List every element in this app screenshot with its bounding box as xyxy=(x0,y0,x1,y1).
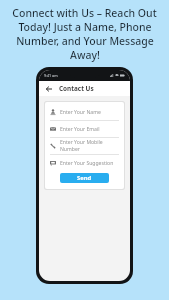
button[interactable]: Enter Your Mobile Number xyxy=(45,138,124,154)
button[interactable]: Enter Your Suggestion xyxy=(45,155,124,171)
staticText: Enter Your Suggestion xyxy=(60,160,114,167)
button[interactable]: Enter Your Email xyxy=(45,121,124,137)
staticText: Number, and Your Message xyxy=(16,34,154,48)
button[interactable]: Send xyxy=(60,173,109,183)
staticText: Enter Your Name xyxy=(60,109,101,116)
staticText: Enter Your Mobile Number xyxy=(60,139,119,153)
button[interactable]: Back xyxy=(44,84,54,94)
staticText: 9:41 am xyxy=(44,73,58,78)
staticText: Connect with Us – Reach Out xyxy=(12,6,157,20)
staticText: Contact Us xyxy=(59,84,94,93)
staticText: Away! xyxy=(70,48,100,62)
staticText: Send xyxy=(77,174,92,182)
staticText: Enter Your Email xyxy=(60,126,100,133)
button[interactable]: Enter Your Name xyxy=(45,104,124,120)
staticText: Today! Just a Name, Phone xyxy=(18,20,152,34)
